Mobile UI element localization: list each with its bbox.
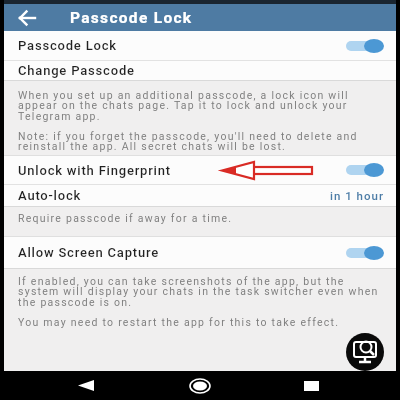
staticText: Auto-lock: [18, 188, 82, 203]
staticText: Unlock with Fingerprint: [18, 163, 171, 178]
button[interactable]: Passcode Lock: [4, 31, 396, 60]
button[interactable]: Auto-lock: [4, 185, 396, 206]
button[interactable]: Allow Screen Capture: [4, 237, 396, 268]
staticText: Change Passcode: [18, 63, 135, 78]
staticText: If enabled, you can take screenshots of …: [18, 275, 379, 309]
staticText: Passcode Lock: [18, 38, 117, 53]
button[interactable]: [20, 11, 36, 25]
staticText: Allow Screen Capture: [18, 245, 159, 260]
button[interactable]: Unlock with Fingerprint: [4, 156, 396, 184]
button[interactable]: [190, 379, 210, 393]
staticText: You may need to restart the app for this…: [18, 316, 340, 328]
button[interactable]: [346, 38, 384, 54]
button[interactable]: Change Passcode: [4, 61, 396, 80]
button[interactable]: [346, 245, 384, 261]
button[interactable]: [78, 380, 94, 391]
staticText: in 1 hour: [330, 189, 384, 202]
staticText: When you set up an additional passcode, …: [18, 89, 349, 123]
staticText: Note: if you forget the passcode, you'll…: [18, 130, 358, 153]
button[interactable]: [346, 162, 384, 178]
staticText: Passcode Lock: [70, 9, 193, 27]
staticText: Require passcode if away for a time.: [18, 212, 233, 224]
